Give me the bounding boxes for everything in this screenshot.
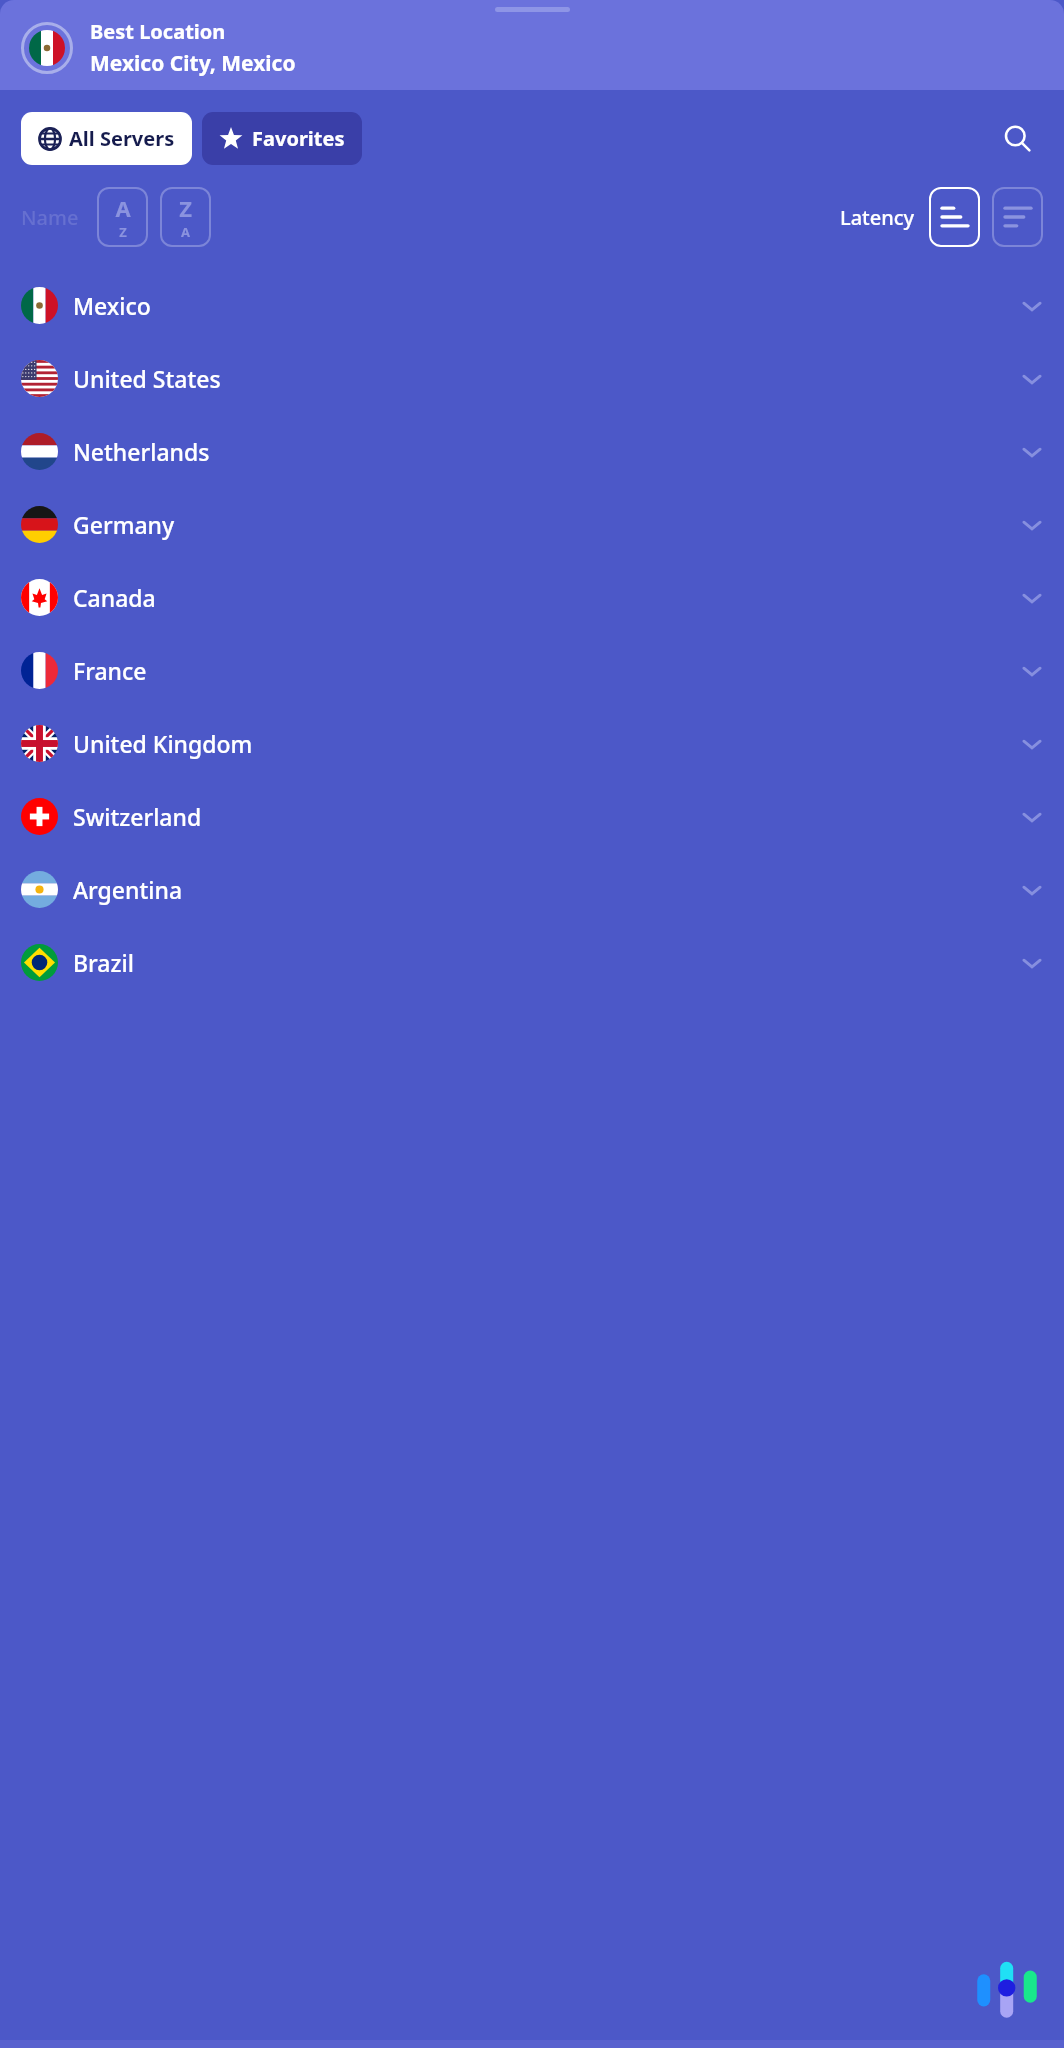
staticText: Mexico: [73, 290, 151, 321]
button[interactable]: Brazil: [0, 926, 1064, 999]
staticText: Z: [119, 223, 127, 241]
staticText: All Servers: [69, 125, 175, 152]
staticText: Netherlands: [73, 436, 210, 467]
staticText: United States: [73, 363, 221, 394]
staticText: United Kingdom: [73, 728, 253, 759]
button[interactable]: Best Location: [21, 18, 1064, 78]
button[interactable]: United States: [0, 342, 1064, 415]
staticText: Switzerland: [73, 801, 202, 832]
button[interactable]: United Kingdom: [0, 707, 1064, 780]
staticText: Canada: [73, 582, 156, 613]
staticText: Mexico City, Mexico: [90, 49, 296, 78]
staticText: Germany: [73, 509, 175, 540]
button[interactable]: Mexico: [0, 269, 1064, 342]
staticText: Best Location: [90, 18, 226, 45]
staticText: A: [115, 193, 131, 223]
button[interactable]: Argentina: [0, 853, 1064, 926]
staticText: Name: [21, 204, 79, 231]
staticText: Z: [179, 193, 192, 223]
staticText: Brazil: [73, 947, 134, 978]
staticText: France: [73, 655, 147, 686]
button[interactable]: Canada: [0, 561, 1064, 634]
button[interactable]: Sort ascending: [929, 187, 980, 247]
button[interactable]: A: [97, 187, 148, 247]
button[interactable]: France: [0, 634, 1064, 707]
button[interactable]: Germany: [0, 488, 1064, 561]
button[interactable]: Sort descending: [992, 187, 1043, 247]
button[interactable]: All Servers: [21, 112, 192, 165]
staticText: Favorites: [252, 125, 345, 152]
button[interactable]: Z: [160, 187, 211, 247]
button[interactable]: Favorites: [202, 112, 362, 165]
staticText: Argentina: [73, 874, 183, 905]
staticText: A: [181, 223, 190, 241]
button[interactable]: Search: [993, 114, 1043, 164]
staticText: Latency: [840, 204, 915, 231]
button[interactable]: Netherlands: [0, 415, 1064, 488]
button[interactable]: Switzerland: [0, 780, 1064, 853]
